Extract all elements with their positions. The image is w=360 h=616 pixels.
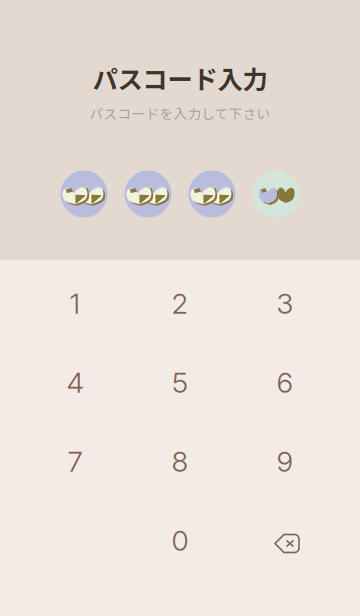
button[interactable]: 3 bbox=[232, 264, 337, 343]
staticText: 4 bbox=[66, 366, 83, 399]
staticText: 1 bbox=[69, 287, 80, 320]
button[interactable]: 5 bbox=[127, 343, 232, 422]
staticText: 9 bbox=[276, 445, 293, 478]
staticText: 3 bbox=[276, 287, 293, 320]
button[interactable]: 4 bbox=[22, 343, 127, 422]
staticText: 8 bbox=[171, 445, 188, 478]
button[interactable]: 0 bbox=[127, 501, 232, 580]
button[interactable]: 9 bbox=[232, 422, 337, 501]
staticText: 6 bbox=[276, 366, 293, 399]
staticText: 5 bbox=[172, 366, 188, 399]
staticText: パスコード入力 bbox=[92, 60, 267, 96]
button[interactable]: 6 bbox=[232, 343, 337, 422]
button[interactable]: 7 bbox=[22, 422, 127, 501]
button[interactable]: Delete bbox=[232, 501, 337, 580]
button[interactable]: 1 bbox=[22, 264, 127, 343]
button[interactable]: 2 bbox=[127, 264, 232, 343]
staticText: 7 bbox=[67, 445, 82, 478]
button[interactable]: 8 bbox=[127, 422, 232, 501]
staticText: 0 bbox=[171, 524, 188, 557]
staticText: 2 bbox=[171, 287, 188, 320]
staticText: パスコードを入力して下さい bbox=[89, 103, 270, 123]
